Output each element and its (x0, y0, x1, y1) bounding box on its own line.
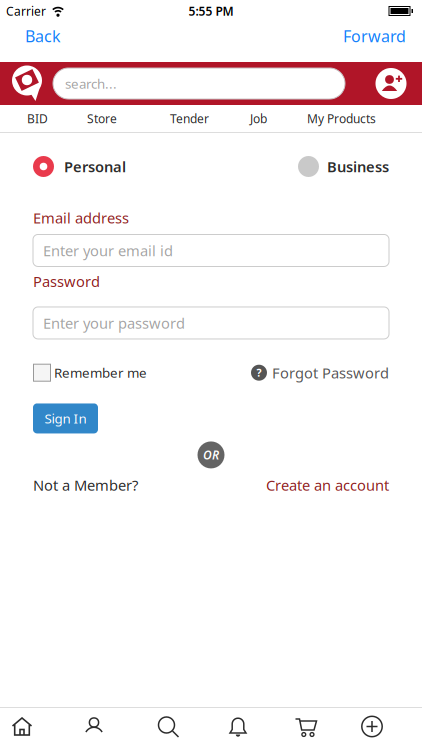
staticText: ? (256, 366, 261, 380)
staticText: Enter your password (43, 313, 185, 333)
staticText: Job (250, 110, 267, 126)
button[interactable]: Forward (343, 25, 406, 47)
staticText: Back (25, 25, 61, 47)
button[interactable]: My Products (307, 110, 376, 126)
staticText: Create an account (266, 475, 389, 495)
button[interactable]: Email address (33, 234, 389, 266)
staticText: Business (327, 157, 389, 176)
staticText: Store (87, 110, 117, 126)
button[interactable]: Sign In (33, 403, 98, 433)
button[interactable]: Sign up (375, 67, 407, 99)
button[interactable]: Create an account (266, 475, 389, 495)
button[interactable]: Job (250, 110, 267, 126)
staticText: Forward (343, 25, 406, 47)
button[interactable]: Home (11, 65, 44, 101)
staticText: BID (27, 110, 48, 126)
button[interactable]: BID (27, 110, 48, 126)
button[interactable]: Password (33, 307, 389, 339)
staticText: Personal (64, 157, 126, 176)
button[interactable]: Search (53, 68, 345, 99)
staticText: Forgot Password (272, 363, 389, 382)
staticText: Sign In (44, 410, 86, 427)
staticText: 5:55 PM (188, 3, 233, 19)
button[interactable]: Home (0, 708, 44, 745)
button[interactable]: Personal (33, 156, 126, 177)
staticText: Email address (33, 208, 129, 227)
button[interactable]: Business (298, 156, 389, 177)
staticText: My Products (307, 110, 376, 126)
button[interactable]: Back (25, 25, 61, 47)
staticText: Password (33, 271, 100, 291)
staticText: Enter your email id (43, 241, 173, 260)
staticText: OR (203, 447, 219, 463)
button[interactable]: Add (350, 708, 394, 745)
button[interactable]: Search (146, 708, 190, 745)
button[interactable]: Store (87, 110, 117, 126)
button[interactable]: Notifications (216, 708, 260, 745)
staticText: search... (65, 75, 117, 92)
button[interactable]: Remember me (33, 364, 147, 382)
button[interactable]: ? (251, 363, 389, 382)
staticText: Carrier (6, 3, 46, 19)
button[interactable]: Tender (170, 110, 209, 126)
staticText: Remember me (54, 364, 147, 381)
button[interactable]: Cart (284, 708, 328, 745)
button[interactable]: Profile (72, 708, 116, 745)
staticText: Tender (170, 110, 209, 126)
staticText: Not a Member? (33, 475, 138, 495)
